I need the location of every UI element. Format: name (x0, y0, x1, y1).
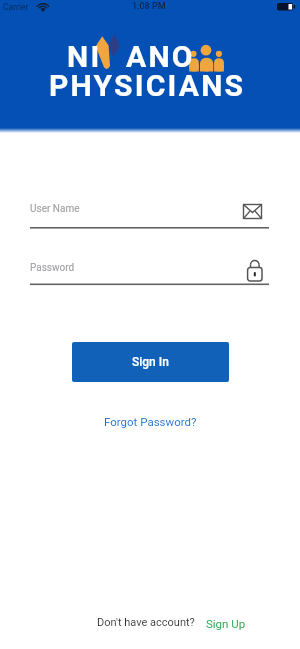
button[interactable]: Forgot Password? (95, 410, 205, 432)
staticText: NI (67, 39, 102, 74)
staticText: Password (30, 262, 75, 274)
staticText: PHYSICIANS (49, 68, 246, 103)
button[interactable]: Sign Up (200, 613, 252, 633)
staticText: Don't have account? (97, 616, 195, 629)
staticText: Carrier (3, 2, 29, 12)
button[interactable]: Sign In (72, 342, 229, 382)
button[interactable]: Password (30, 253, 269, 286)
staticText: User Name (30, 203, 80, 215)
button[interactable]: User Name (30, 196, 269, 229)
staticText: Sign In (132, 355, 169, 369)
staticText: Sign Up (206, 617, 246, 630)
staticText: ANO (126, 39, 195, 74)
staticText: Forgot Password? (104, 415, 197, 428)
staticText: 1:08 PM (132, 1, 166, 12)
